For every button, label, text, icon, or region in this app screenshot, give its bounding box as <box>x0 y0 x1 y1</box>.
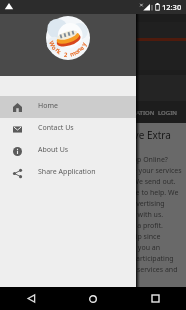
staticText: Home <box>38 101 58 111</box>
staticText: Share Application <box>38 167 96 177</box>
staticText: y <box>79 41 88 47</box>
button[interactable]: Contact Us <box>0 118 136 140</box>
staticText: REGISTRATION <box>112 109 155 117</box>
button[interactable]: LOGIN <box>153 103 181 123</box>
staticText: this makes a profit. <box>100 221 163 231</box>
staticText: we provide you an <box>100 243 161 253</box>
staticText: access to participating <box>100 254 174 264</box>
staticText: Save More Give Extra <box>72 128 171 142</box>
button[interactable]: Recent apps <box>124 287 186 310</box>
staticText: k <box>55 47 63 56</box>
staticText: 12:30 <box>162 2 182 12</box>
staticText: o <box>50 44 58 52</box>
button[interactable]: Home <box>0 96 136 118</box>
staticText: W <box>47 40 57 48</box>
button[interactable]: Back <box>0 287 62 310</box>
staticText: o <box>73 47 81 56</box>
staticText: connect advertising <box>100 199 165 209</box>
button[interactable]: Home <box>62 287 124 310</box>
button[interactable]: REGISTRATION <box>104 103 162 123</box>
staticText: Do you shop Online? <box>100 155 168 165</box>
staticText: Contact Us <box>38 123 74 133</box>
staticText: r <box>54 46 61 54</box>
button[interactable]: Share Application <box>0 162 136 184</box>
staticText: m <box>69 49 77 59</box>
staticText: 2 <box>64 51 68 59</box>
staticText: Membership since <box>100 232 161 242</box>
button[interactable]: About Us <box>0 140 136 162</box>
staticText: We are here to help. We <box>100 188 179 198</box>
staticText: e <box>78 44 86 52</box>
staticText: About Us <box>38 145 69 155</box>
staticText: merchants services and <box>100 265 178 275</box>
staticText: LOGIN <box>158 109 177 117</box>
staticText: n <box>75 46 83 54</box>
staticText: Do you use your services <box>100 166 182 176</box>
staticText: companies with us. <box>100 210 164 220</box>
staticText: provider? We send out. <box>100 177 176 187</box>
